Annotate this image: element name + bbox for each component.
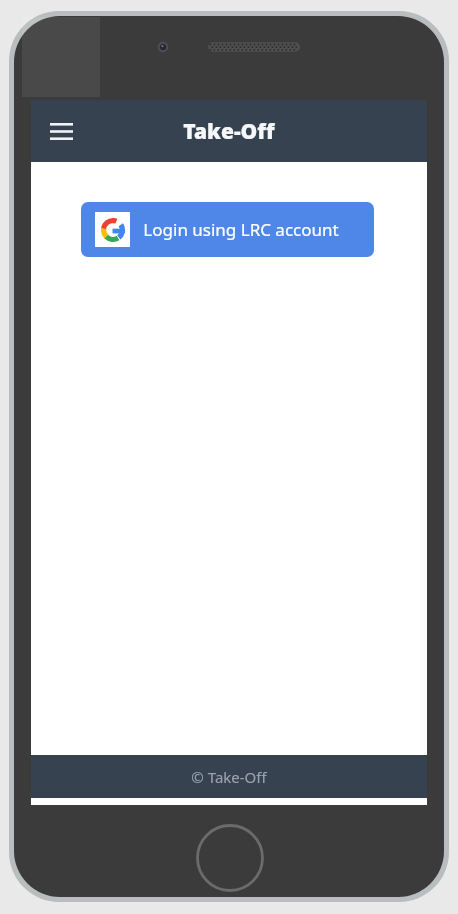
staticText: © Take-Off <box>191 767 267 787</box>
button[interactable]: Login using LRC account <box>81 202 374 257</box>
button[interactable]: Open navigation menu <box>42 112 80 150</box>
staticText: Login using LRC account <box>143 218 339 241</box>
staticText: Take-Off <box>183 117 275 146</box>
